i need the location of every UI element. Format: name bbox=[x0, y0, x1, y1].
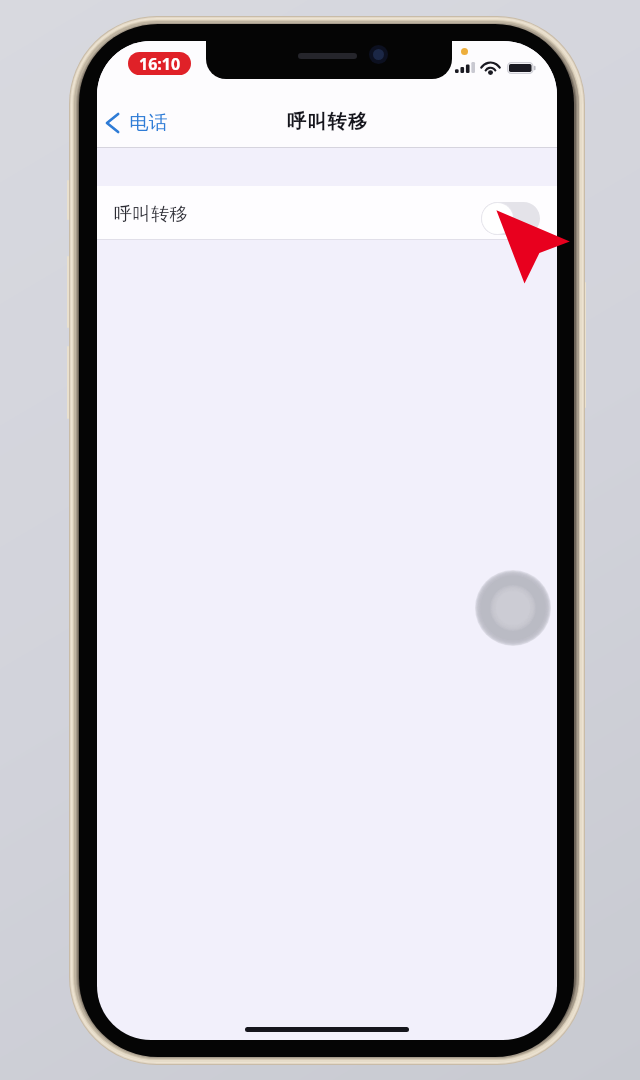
staticText: 呼叫转移 bbox=[114, 203, 189, 226]
staticText: 电话 bbox=[129, 111, 168, 135]
button[interactable]: 电话 bbox=[101, 108, 172, 138]
button[interactable]: Call forwarding switch, off bbox=[481, 202, 540, 235]
button[interactable]: 呼叫转移 bbox=[97, 186, 557, 239]
button[interactable]: AssistiveTouch bbox=[475, 570, 551, 646]
staticText: 16:10 bbox=[139, 53, 181, 75]
staticText: 呼叫转移 bbox=[287, 110, 368, 134]
